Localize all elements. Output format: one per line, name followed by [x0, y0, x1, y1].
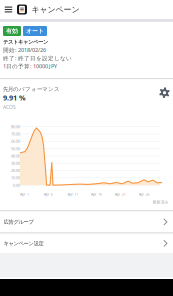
- button[interactable]: Menu: [0, 0, 17, 19]
- staticText: 更新済み: [152, 200, 168, 205]
- staticText: 80.00: [11, 124, 20, 129]
- staticText: Apr 11: [67, 192, 78, 197]
- staticText: 終了: 終了日を設定しない: [3, 54, 72, 62]
- staticText: 1日の予算: 10000 JPY: [3, 62, 57, 70]
- staticText: 有効: [6, 27, 18, 35]
- staticText: 先月のパフォーマンス: [3, 86, 60, 93]
- staticText: 9.91 %: [3, 93, 26, 103]
- staticText: Apr 21: [115, 192, 126, 197]
- staticText: 開始: 2018/02/26: [3, 46, 46, 54]
- staticText: ACOS: [3, 104, 16, 110]
- button[interactable]: キャンペーン設定: [0, 234, 173, 253]
- staticText: 30.00: [11, 160, 20, 166]
- button[interactable]: 広告グループ: [0, 211, 173, 232]
- staticText: Apr 16: [91, 192, 102, 197]
- staticText: 10.00: [11, 175, 20, 180]
- staticText: Apr 6: [44, 192, 53, 197]
- staticText: Apr 26: [138, 192, 149, 197]
- staticText: 20.00: [11, 168, 20, 173]
- staticText: 0.00: [13, 182, 20, 188]
- staticText: 50.00: [11, 146, 20, 151]
- staticText: オート: [26, 27, 44, 35]
- staticText: キャンペーン設定: [3, 240, 43, 247]
- staticText: 70.00: [11, 131, 20, 137]
- button[interactable]: Settings: [159, 87, 170, 98]
- staticText: 60.00: [11, 139, 20, 144]
- staticText: 広告グループ: [3, 218, 33, 225]
- staticText: Apr 1: [20, 192, 29, 197]
- staticText: テストキャンペーン: [3, 38, 48, 45]
- staticText: 40.00: [11, 153, 20, 159]
- staticText: キャンペーン: [31, 4, 79, 15]
